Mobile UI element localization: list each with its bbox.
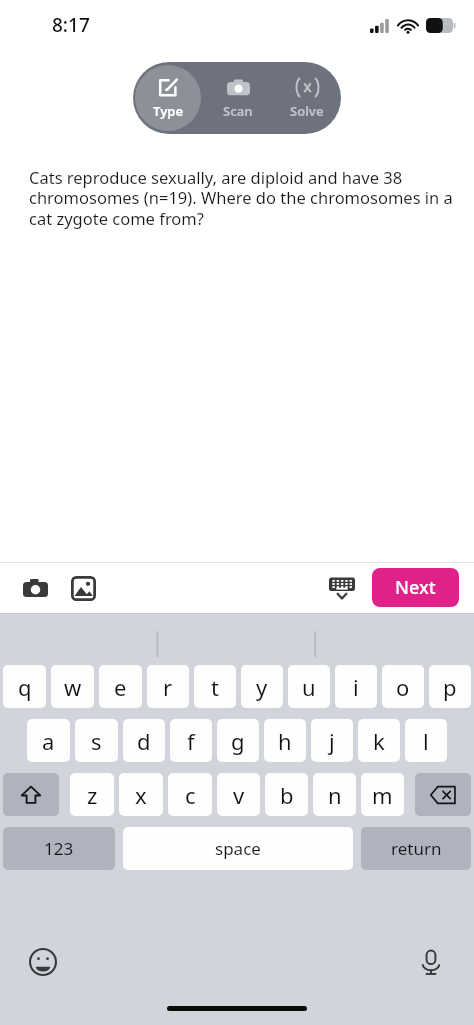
button[interactable]: d (123, 719, 165, 762)
button[interactable]: Type (133, 62, 203, 134)
button[interactable]: k (358, 719, 400, 762)
button[interactable]: g (217, 719, 259, 762)
staticText: q (18, 672, 32, 702)
button[interactable]: Shift (3, 773, 59, 816)
staticText: f (187, 726, 195, 756)
button[interactable]: l (405, 719, 447, 762)
staticText: z (87, 780, 98, 810)
staticText: e (114, 672, 127, 702)
staticText: i (353, 672, 359, 702)
button[interactable]: o (382, 665, 424, 708)
button[interactable]: e (99, 665, 142, 708)
button[interactable]: b (265, 773, 308, 816)
button[interactable]: z (70, 773, 114, 816)
staticText: y (256, 672, 268, 702)
staticText: 123 (44, 837, 74, 860)
button[interactable]: u (288, 665, 330, 708)
button[interactable]: t (194, 665, 236, 708)
staticText: j (329, 726, 335, 756)
button[interactable]: p (429, 665, 471, 708)
button[interactable]: Hide keyboard (324, 570, 360, 606)
staticText: c (185, 780, 196, 810)
staticText: a (42, 726, 55, 756)
button[interactable]: Photo library (66, 571, 100, 605)
button[interactable]: i (335, 665, 377, 708)
staticText: w (64, 672, 82, 702)
button[interactable]: c (168, 773, 212, 816)
staticText: h (278, 726, 292, 756)
staticText: d (137, 726, 151, 756)
button[interactable]: n (313, 773, 356, 816)
button[interactable]: 123 (3, 827, 115, 870)
staticText: u (302, 672, 316, 702)
button[interactable]: v (217, 773, 260, 816)
button[interactable]: Camera (18, 571, 52, 605)
button[interactable]: w (51, 665, 94, 708)
staticText: return (391, 837, 442, 860)
staticText: r (163, 672, 173, 702)
staticText: n (328, 780, 342, 810)
button[interactable]: Next (372, 568, 459, 607)
button[interactable]: y (241, 665, 283, 708)
button[interactable]: m (361, 773, 404, 816)
staticText: t (211, 672, 219, 702)
button[interactable]: Solve (272, 62, 341, 134)
staticText: space (215, 837, 261, 860)
staticText: Solve (290, 102, 324, 120)
staticText: x (135, 780, 147, 810)
staticText: l (423, 726, 429, 756)
button[interactable]: Emoji (26, 945, 60, 979)
staticText: v (233, 780, 245, 810)
button[interactable]: Backspace (415, 773, 471, 816)
button[interactable]: j (311, 719, 353, 762)
button[interactable]: x (119, 773, 163, 816)
staticText: Next (395, 575, 436, 600)
staticText: g (231, 726, 245, 756)
button[interactable]: f (170, 719, 212, 762)
staticText: Cats reproduce sexually, are diploid and… (29, 166, 454, 230)
button[interactable]: return (361, 827, 471, 870)
staticText: m (372, 780, 393, 810)
button[interactable]: r (147, 665, 189, 708)
staticText: k (373, 726, 385, 756)
button[interactable]: a (27, 719, 70, 762)
staticText: p (443, 672, 457, 702)
button[interactable]: s (75, 719, 118, 762)
button[interactable]: Scan (203, 62, 272, 134)
button[interactable]: h (264, 719, 306, 762)
button[interactable]: Dictate (414, 945, 448, 979)
staticText: b (280, 780, 294, 810)
staticText: Scan (223, 102, 253, 120)
button[interactable]: space (123, 827, 353, 870)
staticText: Type (153, 102, 184, 120)
button[interactable]: q (3, 665, 46, 708)
staticText: o (396, 672, 410, 702)
staticText: 8:17 (52, 12, 90, 38)
staticText: s (91, 726, 102, 756)
